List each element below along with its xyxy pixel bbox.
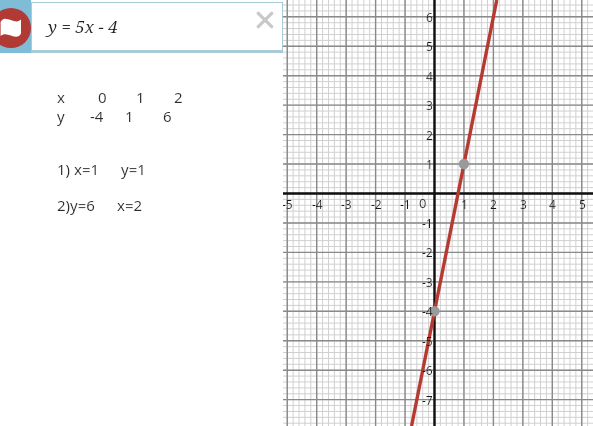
staticText: -4 <box>422 303 433 319</box>
staticText: -5 <box>422 333 433 349</box>
staticText: 2 <box>174 87 183 107</box>
staticText: x=2 <box>117 195 143 215</box>
staticText: -3 <box>341 196 352 212</box>
staticText: -2 <box>422 244 433 260</box>
staticText: -6 <box>422 362 433 378</box>
staticText: 2 <box>490 196 497 212</box>
staticText: 0 <box>419 194 427 212</box>
staticText: 0 <box>98 87 107 107</box>
staticText: 2 <box>426 127 433 143</box>
staticText: -4 <box>90 106 104 126</box>
staticText: 1 <box>125 106 134 126</box>
staticText: 1 <box>426 156 433 172</box>
staticText: 1) x=1 <box>57 159 100 179</box>
staticText: -4 <box>312 196 323 212</box>
staticText: 5 <box>426 38 433 54</box>
staticText: x <box>57 87 65 107</box>
staticText: -3 <box>422 274 433 290</box>
staticText: y <box>57 106 65 126</box>
staticText: 4 <box>426 68 433 84</box>
staticText: 6 <box>163 106 172 126</box>
staticText: 4 <box>549 196 556 212</box>
staticText: 3 <box>520 196 527 212</box>
staticText: -1 <box>400 196 411 212</box>
button[interactable]: y = 5x − 4 <box>31 2 283 51</box>
staticText: 1 <box>461 196 468 212</box>
staticText: -7 <box>422 392 433 408</box>
staticText: y=1 <box>121 159 146 179</box>
staticText: 3 <box>426 97 433 113</box>
staticText: -1 <box>422 215 433 231</box>
staticText: 5 <box>579 196 586 212</box>
button[interactable]: App icon <box>0 8 31 48</box>
staticText: y = 5x − 4 <box>48 15 118 38</box>
staticText: -5 <box>282 196 293 212</box>
staticText: 6 <box>426 9 433 25</box>
button[interactable]: Close <box>251 6 279 34</box>
staticText: -2 <box>371 196 382 212</box>
staticText: 1 <box>136 87 145 107</box>
staticText: 2)y=6 <box>57 195 95 215</box>
